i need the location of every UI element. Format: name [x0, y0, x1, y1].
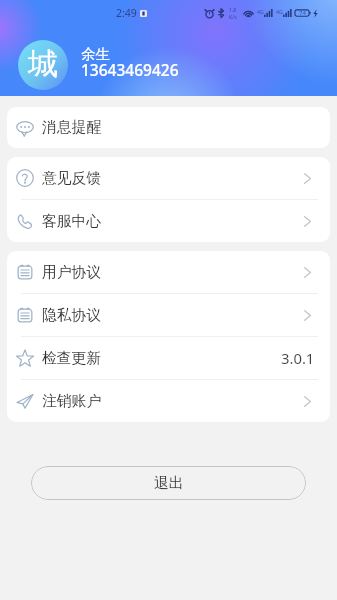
button[interactable]: 隐私协议 — [7, 294, 330, 336]
staticText: 注销账户 — [42, 392, 102, 411]
staticText: 74 — [299, 9, 306, 17]
staticText: K/s — [229, 13, 237, 20]
staticText: 隐私协议 — [42, 306, 102, 325]
staticText: 检查更新 — [42, 349, 102, 368]
staticText: 用户协议 — [42, 263, 102, 282]
button[interactable]: 消息提醒 — [7, 107, 330, 148]
button[interactable]: 检查更新 — [7, 337, 330, 379]
staticText: 客服中心 — [42, 212, 102, 231]
button[interactable]: 退出 — [31, 466, 306, 500]
staticText: 消息提醒 — [42, 118, 102, 137]
staticText: 2:49 — [116, 6, 137, 20]
staticText: 4G — [257, 8, 264, 15]
staticText: 4G — [276, 8, 283, 15]
button[interactable]: 客服中心 — [7, 200, 330, 242]
staticText: 意见反馈 — [42, 169, 102, 188]
staticText: 余生 — [81, 45, 110, 63]
staticText: 13643469426 — [81, 59, 179, 80]
staticText: 退出 — [154, 474, 184, 493]
staticText: 城 — [28, 45, 58, 83]
staticText: 1.8 — [229, 6, 237, 13]
staticText: 3.0.1 — [281, 348, 315, 368]
button[interactable]: 注销账户 — [7, 380, 330, 422]
button[interactable]: 用户协议 — [7, 251, 330, 293]
button[interactable]: 意见反馈 — [7, 157, 330, 199]
